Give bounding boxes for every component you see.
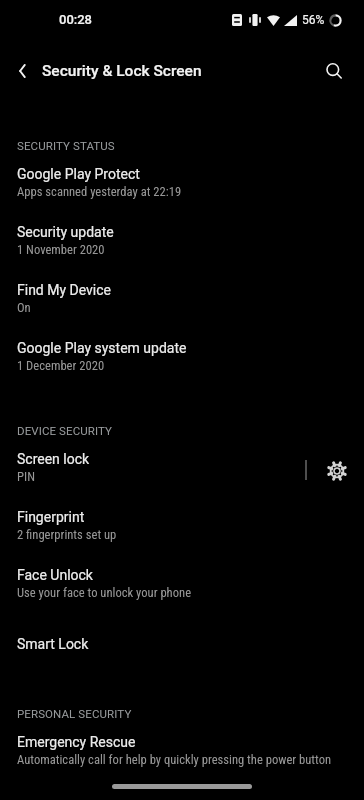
button[interactable]: Face Unlock <box>0 557 364 615</box>
button[interactable] <box>112 784 252 789</box>
staticText: 1 December 2020 <box>17 358 105 373</box>
staticText: On <box>17 300 31 315</box>
button[interactable]: Emergency Rescue <box>0 724 364 782</box>
staticText: Use your face to unlock your phone <box>17 585 192 600</box>
staticText: Apps scanned yesterday at 22:19 <box>17 184 182 199</box>
button[interactable]: Screen lock <box>0 441 364 499</box>
staticText: PERSONAL SECURITY <box>17 707 132 720</box>
staticText: 00:28 <box>59 12 93 27</box>
staticText: PIN <box>17 469 35 484</box>
staticText: Automatically call for help by quickly p… <box>17 752 332 767</box>
staticText: Find My Device <box>17 282 112 298</box>
staticText: Fingerprint <box>17 509 85 525</box>
button[interactable]: Smart Lock <box>0 615 364 673</box>
button[interactable] <box>314 51 354 91</box>
staticText: DEVICE SECURITY <box>17 424 113 437</box>
staticText: Face Unlock <box>17 567 93 583</box>
button[interactable] <box>316 450 358 492</box>
staticText: 1 November 2020 <box>17 242 105 257</box>
button[interactable]: Google Play Protect <box>0 156 364 214</box>
button[interactable] <box>1 49 45 93</box>
staticText: Screen lock <box>17 451 90 467</box>
button[interactable]: Google Play system update <box>0 330 364 388</box>
staticText: 2 fingerprints set up <box>17 527 117 542</box>
staticText: Google Play system update <box>17 340 187 356</box>
staticText: Security & Lock Screen <box>42 62 202 80</box>
staticText: Emergency Rescue <box>17 734 136 750</box>
button[interactable]: Fingerprint <box>0 499 364 557</box>
staticText: SECURITY STATUS <box>17 139 115 152</box>
staticText: Security update <box>17 224 114 240</box>
staticText: Google Play Protect <box>17 166 140 182</box>
button[interactable]: Security update <box>0 214 364 272</box>
staticText: 56% <box>302 13 325 27</box>
staticText: Smart Lock <box>17 636 89 652</box>
button[interactable]: Find My Device <box>0 272 364 330</box>
